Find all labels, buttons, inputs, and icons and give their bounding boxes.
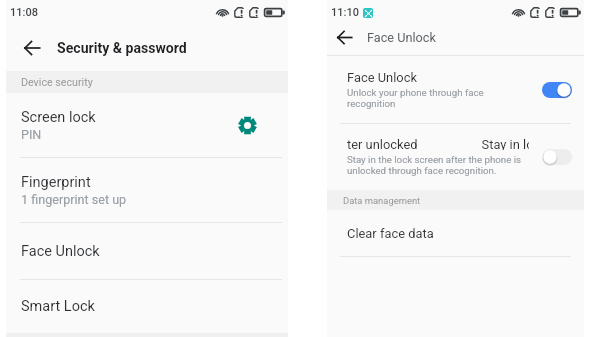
staticText: Unlock your phone through face recogniti…	[347, 87, 534, 109]
staticText: Security & password	[57, 40, 187, 57]
button[interactable]: Screen lock settings	[234, 112, 260, 138]
staticText: Smart Lock	[21, 298, 95, 315]
staticText: Data management	[343, 195, 421, 206]
staticText: 1 fingerprint set up	[21, 192, 127, 207]
button[interactable]: Turn on	[542, 147, 572, 167]
staticText: Screen lock	[21, 109, 96, 126]
button[interactable]: Face Unlock	[6, 223, 288, 279]
staticText: 11:10	[331, 6, 359, 19]
staticText: Fingerprint	[21, 174, 91, 191]
staticText: ter unlocked Stay in lock screen	[347, 137, 529, 150]
staticText: Face Unlock	[21, 243, 100, 260]
staticText: Face Unlock	[367, 30, 436, 45]
staticText: Clear face data	[347, 226, 434, 241]
staticText: Face Unlock	[347, 70, 417, 85]
button[interactable]: Fingerprint	[6, 158, 288, 222]
button[interactable]: ter unlocked Stay in lock screen	[327, 124, 584, 190]
button[interactable]: Back	[15, 31, 49, 65]
staticText: 11:08	[10, 6, 38, 19]
button[interactable]: Turn off Face Unlock	[542, 80, 572, 100]
staticText: PIN	[21, 127, 42, 142]
button[interactable]: Back	[330, 23, 358, 51]
button[interactable]: Clear face data	[327, 210, 584, 256]
staticText: Stay in the lock screen after the phone …	[347, 154, 534, 176]
button[interactable]: Face Unlock	[327, 56, 584, 123]
button[interactable]: Screen lock	[6, 93, 288, 157]
button[interactable]: Smart Lock	[6, 280, 288, 333]
staticText: Device security	[21, 76, 93, 89]
